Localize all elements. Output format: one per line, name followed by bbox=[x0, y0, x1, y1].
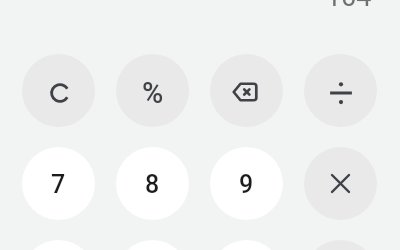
button[interactable]: Four bbox=[22, 240, 95, 250]
button[interactable]: Percent bbox=[116, 54, 189, 127]
staticText: 8 bbox=[145, 170, 160, 199]
staticText: 7 bbox=[51, 170, 66, 199]
staticText: % bbox=[142, 76, 164, 110]
button[interactable]: Backspace bbox=[210, 54, 283, 127]
button[interactable]: Six bbox=[210, 240, 283, 250]
staticText: 9 bbox=[239, 170, 254, 199]
button[interactable]: Five bbox=[116, 240, 189, 250]
button[interactable]: Seven bbox=[22, 147, 95, 220]
staticText: 104 bbox=[326, 0, 372, 13]
button[interactable]: Nine bbox=[210, 147, 283, 220]
button[interactable]: Minus bbox=[304, 240, 377, 250]
button[interactable]: Clear bbox=[22, 54, 95, 127]
button[interactable]: Divide bbox=[304, 54, 377, 127]
button[interactable]: Eight bbox=[116, 147, 189, 220]
button[interactable]: Multiply bbox=[304, 147, 377, 220]
